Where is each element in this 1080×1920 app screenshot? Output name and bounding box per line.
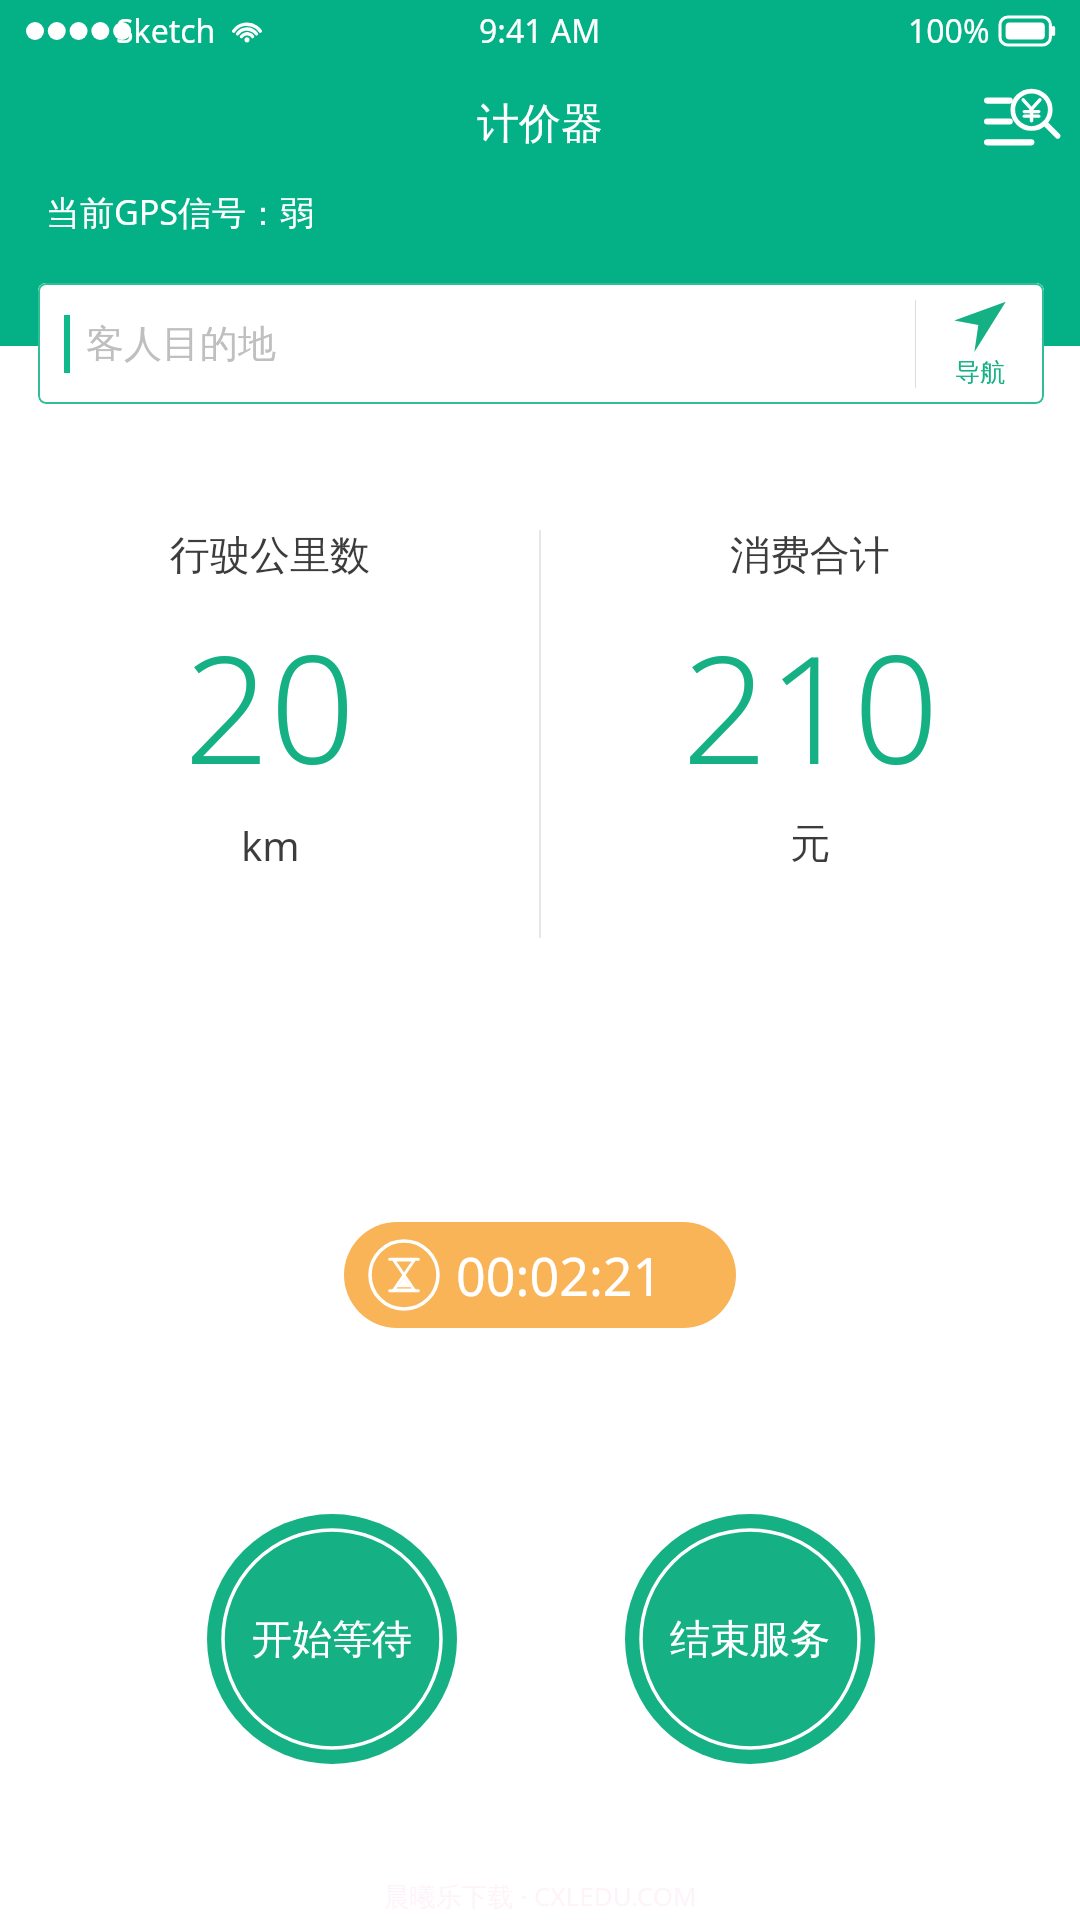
staticText: 00:02:21 bbox=[456, 1240, 663, 1311]
staticText: 210 bbox=[682, 604, 939, 808]
staticText: 9:41 AM bbox=[479, 9, 601, 53]
button[interactable]: 导航 bbox=[916, 283, 1044, 404]
staticText: 消费合计 bbox=[730, 530, 890, 580]
staticText: 导航 bbox=[955, 357, 1005, 388]
staticText: 客人目的地 bbox=[86, 320, 276, 368]
staticText: 100% bbox=[908, 9, 990, 53]
button[interactable]: 价格明细 bbox=[982, 84, 1058, 160]
staticText: 开始等待 bbox=[252, 1614, 412, 1664]
staticText: 行驶公里数 bbox=[170, 530, 370, 580]
staticText: Sketch bbox=[116, 9, 216, 53]
staticText: 元 bbox=[790, 818, 830, 868]
staticText: km bbox=[241, 818, 300, 872]
button[interactable]: 00:02:21 bbox=[344, 1222, 736, 1328]
button[interactable]: 客人目的地 bbox=[38, 283, 1044, 404]
staticText: 结束服务 bbox=[670, 1614, 830, 1664]
staticText: 计价器 bbox=[477, 98, 603, 151]
staticText: 20 bbox=[184, 604, 356, 808]
button[interactable]: 开始等待 bbox=[207, 1514, 457, 1764]
button[interactable]: 结束服务 bbox=[625, 1514, 875, 1764]
staticText: 当前GPS信号：弱 bbox=[46, 189, 314, 235]
